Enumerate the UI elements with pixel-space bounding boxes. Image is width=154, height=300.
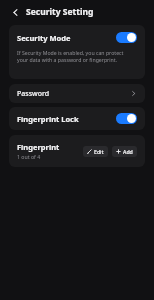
button[interactable]: Fingerprint Lock xyxy=(9,107,145,130)
staticText: Password xyxy=(17,89,50,99)
button[interactable]: Edit xyxy=(83,146,108,157)
staticText: Fingerprint xyxy=(17,142,60,152)
staticText: Fingerprint Lock xyxy=(17,114,79,124)
staticText: 1 out of 4 xyxy=(17,153,41,160)
staticText: Security Setting xyxy=(26,6,94,18)
staticText: Edit xyxy=(94,148,104,155)
button[interactable]: Toggle xyxy=(116,32,137,43)
button[interactable]: Back xyxy=(8,5,22,19)
button[interactable]: Password xyxy=(9,84,145,103)
button[interactable]: Fingerprint xyxy=(9,135,145,167)
staticText: Add xyxy=(123,148,133,155)
button[interactable]: Toggle xyxy=(116,113,137,124)
button[interactable]: Add xyxy=(112,146,137,157)
button[interactable]: Security Mode xyxy=(9,25,145,79)
staticText: Security Mode xyxy=(17,33,71,43)
staticText: If Security Mode is enabled, you can pro… xyxy=(17,49,129,64)
